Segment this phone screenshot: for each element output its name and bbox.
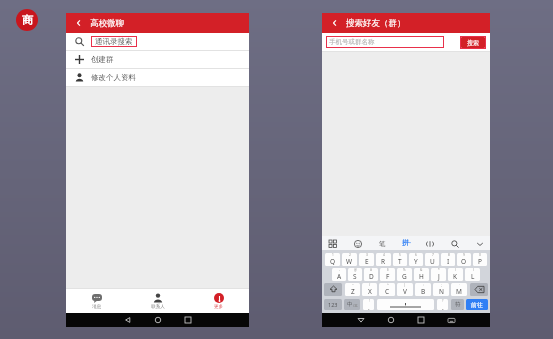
button[interactable]: 6 [409, 253, 423, 266]
button[interactable]: ! [363, 299, 374, 310]
button[interactable]: 拼· [402, 238, 411, 248]
staticText: F [386, 272, 390, 281]
staticText: / [369, 283, 371, 287]
staticText: 手机号或群名称 [329, 38, 375, 46]
staticText: E [365, 257, 369, 266]
button[interactable]: 8 [441, 253, 455, 266]
button[interactable]: ; [433, 283, 449, 296]
button[interactable]: 7 [425, 253, 439, 266]
button[interactable]: Shift [324, 283, 342, 296]
button[interactable]: ? [437, 299, 448, 310]
button[interactable]: 2 [342, 253, 357, 266]
button[interactable]: Back [356, 315, 366, 325]
staticText: 4 [383, 253, 385, 257]
button[interactable]: Back [73, 17, 85, 29]
button[interactable]: 联系人 [127, 289, 188, 313]
staticText: 搜索好友（群） [346, 18, 406, 29]
staticText: O [461, 257, 467, 266]
button[interactable]: Backspace [470, 283, 488, 296]
button[interactable]: ( [448, 268, 463, 281]
staticText: · [459, 283, 460, 287]
button[interactable]: Hide keyboard [446, 315, 456, 325]
staticText: 8 [448, 253, 450, 257]
button[interactable]: / [362, 283, 377, 296]
staticText: 2 [349, 253, 351, 257]
button[interactable]: 修改个人资料 [66, 69, 249, 86]
staticText: ( [455, 268, 456, 272]
button[interactable]: smile [352, 238, 363, 249]
staticText: 搜索 [467, 39, 479, 47]
staticText: K [453, 272, 458, 281]
button[interactable]: ~ [345, 283, 360, 296]
button[interactable]: voice [424, 238, 435, 249]
staticText: I [447, 257, 450, 266]
staticText: - [339, 268, 341, 272]
button[interactable]: Home [386, 315, 396, 325]
button[interactable]: Recents [416, 315, 426, 325]
button[interactable]: 创建群 [66, 51, 249, 68]
staticText: 中 [347, 301, 353, 308]
button[interactable]: 5 [393, 253, 407, 266]
staticText: A [337, 272, 342, 281]
button[interactable]: ) [465, 268, 480, 281]
staticText: C [385, 287, 390, 296]
button[interactable]: $ [380, 268, 395, 281]
button[interactable]: Recents [183, 315, 193, 325]
button[interactable]: 123 [324, 299, 342, 310]
staticText: ~ [352, 283, 354, 287]
button[interactable]: # [364, 268, 378, 281]
button[interactable]: - [332, 268, 346, 281]
staticText: N [439, 287, 444, 296]
staticText: 通讯录搜索 [95, 37, 133, 46]
button[interactable]: · [451, 283, 467, 296]
button[interactable]: 符 [451, 299, 464, 310]
staticText: ) [473, 268, 474, 272]
button[interactable]: 4 [376, 253, 391, 266]
button[interactable]: | [397, 283, 413, 296]
button[interactable]: 更多 [188, 289, 249, 313]
button[interactable]: 9 [457, 253, 471, 266]
button[interactable]: 1 [325, 253, 340, 266]
staticText: % [403, 268, 406, 272]
button[interactable]: 搜索 [461, 37, 485, 48]
button[interactable]: 笔 [377, 238, 388, 249]
button[interactable]: 前往 [466, 299, 488, 310]
button[interactable]: 消息 [66, 289, 127, 313]
button[interactable]: 通讯录搜索 [66, 33, 249, 50]
button[interactable]: grid [327, 238, 338, 249]
button[interactable]: @ [348, 268, 362, 281]
staticText: M [456, 287, 462, 296]
button[interactable]: down [474, 238, 485, 249]
staticText: ^ [387, 283, 389, 287]
button[interactable]: Language [344, 299, 360, 310]
staticText: /英 [353, 303, 358, 308]
staticText: . [442, 303, 444, 310]
staticText: 消息 [92, 304, 101, 310]
button[interactable]: Space [377, 299, 434, 310]
button[interactable]: Home [153, 315, 163, 325]
staticText: G [402, 272, 407, 281]
button[interactable]: Back [329, 17, 341, 29]
button[interactable]: ^ [379, 283, 395, 296]
staticText: 123 [328, 301, 338, 308]
staticText: U [430, 257, 435, 266]
button[interactable]: 3 [359, 253, 374, 266]
staticText: R [381, 257, 386, 266]
staticText: 拼· [402, 238, 411, 248]
staticText: Q [330, 257, 336, 266]
staticText: @ [354, 268, 357, 272]
button[interactable]: 手机号或群名称 [326, 36, 444, 48]
staticText: X [368, 287, 372, 296]
staticText: L [471, 272, 475, 281]
button[interactable]: Back [123, 315, 133, 325]
staticText: 7 [432, 253, 434, 257]
staticText: 笔 [379, 240, 386, 248]
staticText: 9 [463, 253, 465, 257]
button[interactable]: * [431, 268, 446, 281]
button[interactable]: search [449, 238, 460, 249]
button[interactable]: : [415, 283, 431, 296]
button[interactable]: & [414, 268, 429, 281]
button[interactable]: % [397, 268, 412, 281]
button[interactable]: 0 [473, 253, 487, 266]
staticText: V [403, 287, 407, 296]
